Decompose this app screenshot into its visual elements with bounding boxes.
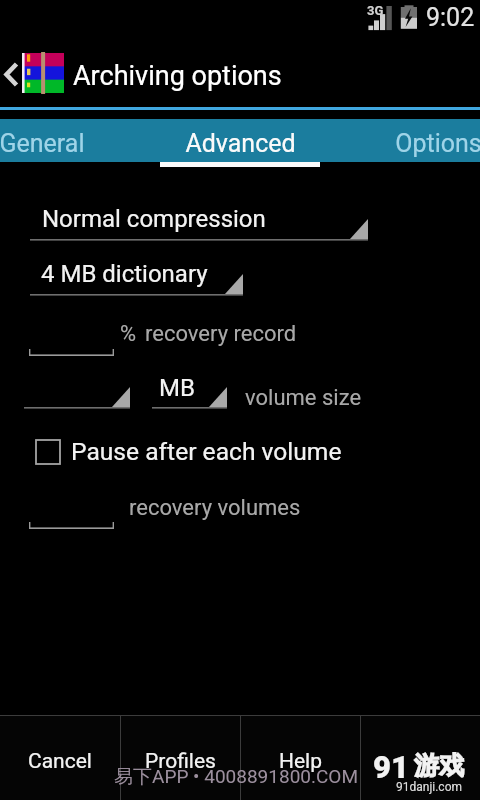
- button[interactable]: Cancel: [0, 716, 120, 800]
- button[interactable]: General: [0, 119, 141, 162]
- staticText: Normal compression: [42, 205, 266, 233]
- staticText: MB: [159, 374, 195, 402]
- staticText: Archiving options: [73, 60, 282, 92]
- staticText: 3G: [367, 3, 384, 18]
- staticText: recovery volumes: [129, 495, 301, 521]
- staticText: recovery record: [145, 321, 297, 347]
- button[interactable]: Profiles: [121, 716, 240, 800]
- button[interactable]: 4 MB dictionary: [30, 262, 243, 296]
- staticText: Cancel: [28, 749, 92, 774]
- staticText: Options: [395, 129, 480, 158]
- staticText: 游戏: [414, 750, 464, 781]
- button[interactable]: [24, 374, 130, 409]
- button[interactable]: Normal compression: [30, 207, 368, 241]
- staticText: 91danji.com: [396, 780, 463, 794]
- staticText: Profiles: [145, 749, 216, 774]
- staticText: %: [120, 321, 137, 347]
- staticText: 4 MB dictionary: [41, 260, 208, 288]
- staticText: Help: [279, 749, 323, 774]
- button[interactable]: Advanced: [141, 119, 339, 162]
- staticText: Advanced: [185, 129, 296, 158]
- staticText: 91: [373, 749, 409, 785]
- button[interactable]: Navigate up: [0, 40, 480, 107]
- staticText: volume size: [245, 385, 362, 411]
- button[interactable]: Options: [339, 119, 480, 162]
- staticText: 易下APP • 4008891800.COM: [114, 765, 359, 789]
- button[interactable]: Help: [241, 716, 360, 800]
- button[interactable]: [29, 502, 114, 529]
- button[interactable]: [29, 329, 114, 356]
- staticText: 9:02: [426, 3, 475, 32]
- button[interactable]: MB: [152, 374, 227, 409]
- staticText: General: [0, 129, 85, 158]
- staticText: Pause after each volume: [71, 437, 342, 466]
- button[interactable]: Pause after each volume: [30, 434, 342, 470]
